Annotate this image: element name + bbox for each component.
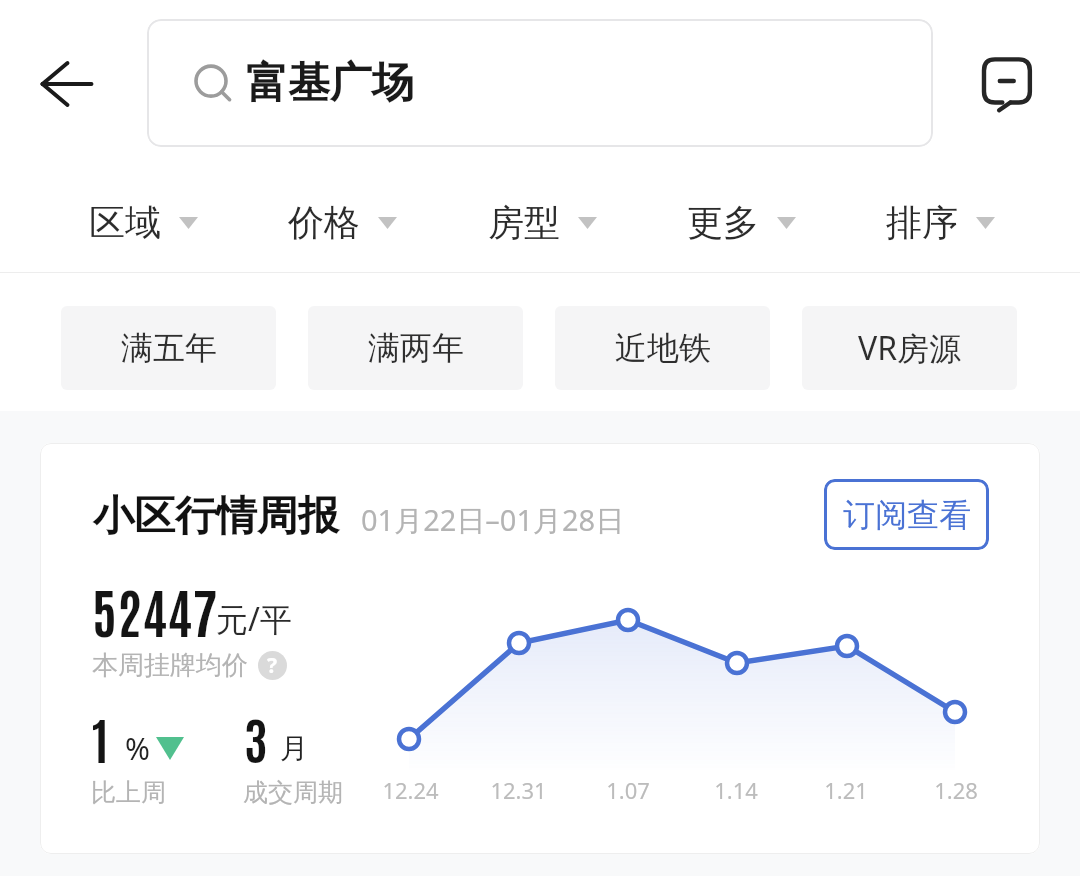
staticText: 满两年 [368, 328, 464, 368]
staticText: VR房源 [858, 326, 962, 370]
button[interactable]: Back [25, 42, 109, 126]
staticText: 3 [244, 705, 268, 770]
staticText: 比上周 [91, 777, 166, 808]
staticText: 区域 [89, 200, 161, 245]
staticText: ? [267, 651, 278, 680]
staticText: 52447 [92, 575, 218, 645]
button[interactable]: 订阅查看 [824, 479, 989, 550]
staticText: 1 [92, 705, 109, 770]
button[interactable]: 富基广场 [147, 19, 933, 147]
staticText: 1.07 [606, 775, 650, 805]
staticText: 01月22日–01月28日 [361, 500, 625, 540]
button[interactable]: 区域 [89, 200, 198, 245]
staticText: 1.28 [934, 775, 978, 805]
staticText: 更多 [687, 200, 759, 245]
staticText: 成交周期 [243, 777, 343, 808]
button[interactable]: Messages [964, 45, 1048, 129]
staticText: 本周挂牌均价 [92, 649, 248, 682]
button[interactable]: 房型 [488, 200, 597, 245]
staticText: 12.24 [382, 775, 439, 805]
button[interactable]: 近地铁 [555, 306, 770, 390]
staticText: 近地铁 [615, 328, 711, 368]
button[interactable]: 更多 [687, 200, 796, 245]
staticText: 12.31 [490, 775, 547, 805]
staticText: 1.21 [824, 775, 868, 805]
staticText: 小区行情周报 [93, 491, 339, 543]
button[interactable]: 满两年 [308, 306, 523, 390]
button[interactable]: 价格 [288, 200, 397, 245]
staticText: 排序 [886, 200, 958, 245]
button[interactable]: 满五年 [61, 306, 276, 390]
button[interactable]: VR房源 [802, 306, 1017, 390]
staticText: 富基广场 [246, 57, 414, 110]
staticText: 价格 [288, 200, 360, 245]
staticText: 订阅查看 [843, 495, 971, 535]
staticText: 1.14 [714, 775, 758, 805]
staticText: 房型 [488, 200, 560, 245]
button[interactable]: 排序 [886, 200, 995, 245]
staticText: 元/平 [216, 597, 292, 641]
staticText: 月 [280, 731, 308, 766]
staticText: 满五年 [121, 328, 217, 368]
staticText: % [125, 728, 150, 769]
